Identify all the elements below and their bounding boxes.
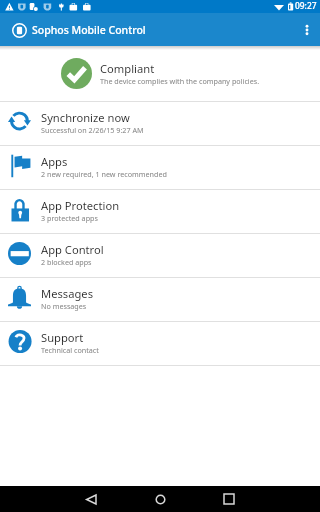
button[interactable]: Home xyxy=(147,486,174,512)
button[interactable]: App icon xyxy=(8,19,30,41)
staticText: Sophos Mobile Control xyxy=(32,23,146,37)
button[interactable]: App Protection xyxy=(0,190,320,233)
button[interactable]: Recents xyxy=(215,486,242,512)
staticText: 3 protected apps xyxy=(41,213,98,223)
staticText: 2 new required, 1 new recommended xyxy=(41,169,167,179)
staticText: Successful on 2/26/15 9:27 AM xyxy=(41,125,144,135)
button[interactable]: More options xyxy=(295,18,319,42)
staticText: Technical contact xyxy=(41,345,99,355)
staticText: No messages xyxy=(41,301,87,311)
button[interactable]: Support xyxy=(0,322,320,365)
staticText: Compliant xyxy=(100,61,155,76)
button[interactable]: Apps xyxy=(0,146,320,189)
button[interactable]: App Control xyxy=(0,234,320,277)
staticText: 09:27 xyxy=(295,0,317,11)
button[interactable]: Messages xyxy=(0,278,320,321)
staticText: Support xyxy=(41,330,84,345)
staticText: Synchronize now xyxy=(41,110,130,125)
staticText: App Protection xyxy=(41,198,120,213)
staticText: App Control xyxy=(41,242,104,257)
button[interactable]: Compliant xyxy=(0,50,320,101)
staticText: The device complies with the company pol… xyxy=(100,76,260,86)
staticText: Messages xyxy=(41,286,93,301)
button[interactable]: Back xyxy=(78,486,105,512)
staticText: 2 blocked apps xyxy=(41,257,92,267)
button[interactable]: Synchronize now xyxy=(0,102,320,145)
staticText: Apps xyxy=(41,154,68,169)
